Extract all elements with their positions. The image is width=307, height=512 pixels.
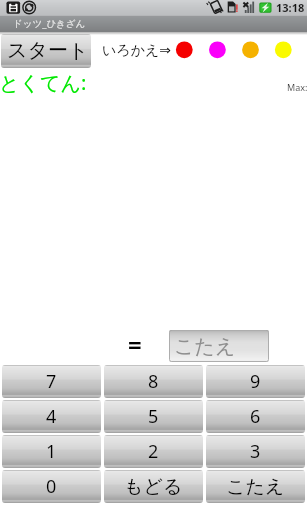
button[interactable]: こたえ <box>169 330 269 362</box>
staticText: 3 <box>250 439 261 464</box>
staticText: = <box>128 328 142 361</box>
staticText: Max: <box>287 81 307 93</box>
button[interactable]: 3 <box>206 435 305 468</box>
button[interactable]: 0 <box>2 470 101 503</box>
button[interactable]: スタート <box>1 34 91 68</box>
staticText: 2 <box>148 439 159 464</box>
staticText: こたえ <box>174 334 236 359</box>
staticText: スタート <box>7 38 89 63</box>
button[interactable]: 6 <box>206 400 305 433</box>
button[interactable]: 4 <box>2 400 101 433</box>
button[interactable]: 5 <box>104 400 203 433</box>
staticText: いろかえ⇒ <box>102 42 172 60</box>
button[interactable]: 1 <box>2 435 101 468</box>
staticText: 8 <box>148 369 159 394</box>
staticText: ドッツ_ひきざん <box>13 17 86 30</box>
staticText: 0 <box>46 474 57 499</box>
staticText: 7 <box>46 369 57 394</box>
staticText: 13:18 <box>276 0 305 15</box>
staticText: 6 <box>250 404 261 429</box>
staticText: こたえ <box>226 475 285 499</box>
button[interactable]: 7 <box>2 365 101 398</box>
staticText: 5 <box>148 404 159 429</box>
staticText: 1 <box>46 439 57 464</box>
staticText: 4 <box>46 404 57 429</box>
button[interactable]: こたえ <box>206 470 305 503</box>
staticText: もどる <box>124 475 183 499</box>
staticText: とくてん: <box>0 69 87 96</box>
button[interactable]: 9 <box>206 365 305 398</box>
button[interactable]: もどる <box>104 470 203 503</box>
staticText: 9 <box>250 369 261 394</box>
button[interactable]: 2 <box>104 435 203 468</box>
button[interactable]: 8 <box>104 365 203 398</box>
